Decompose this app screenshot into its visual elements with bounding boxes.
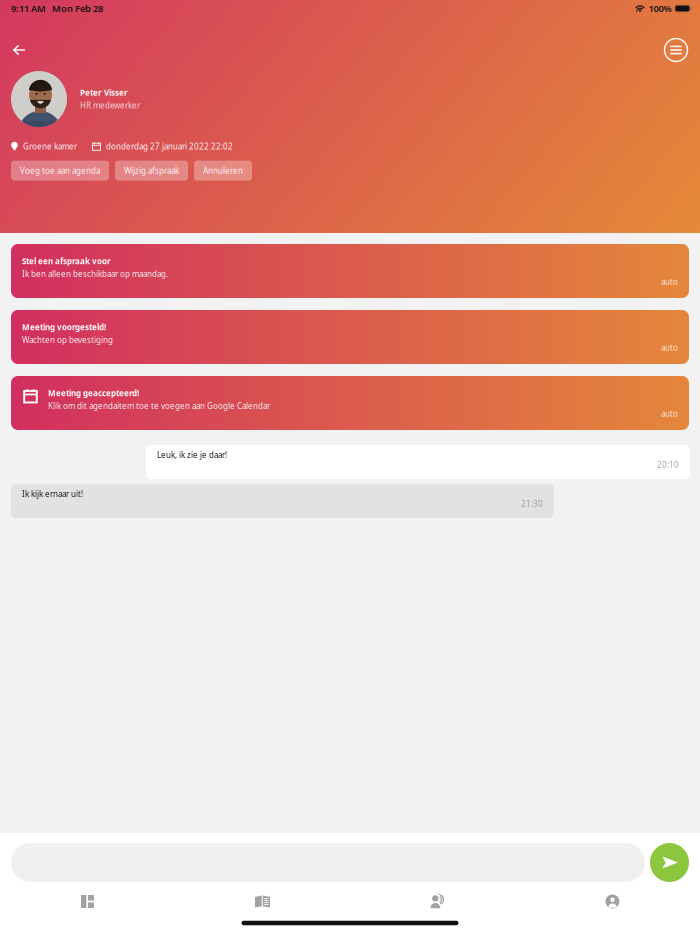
staticText: auto [661, 276, 678, 287]
button[interactable]: Conversations [350, 882, 525, 921]
staticText: Meeting voorgesteld! [22, 322, 106, 332]
button[interactable]: Send [650, 843, 689, 882]
staticText: Annuleren [203, 165, 243, 176]
button[interactable]: Stel een afspraak voor [11, 244, 689, 298]
button[interactable]: Meeting voorgesteld! [11, 310, 689, 364]
staticText: Ik kijk ernaar uit! [22, 489, 83, 499]
staticText: Wijzig afspraak [124, 165, 179, 176]
button[interactable]: Dashboard [0, 882, 175, 921]
staticText: auto [661, 408, 678, 419]
button[interactable]: Meeting geaccepteerd! [11, 376, 689, 430]
staticText: donderdag 27 januari 2022 22:02 [106, 141, 233, 152]
button[interactable]: Wijzig afspraak [115, 161, 188, 181]
staticText: 100% [648, 2, 671, 15]
staticText: Groene kamer [23, 141, 77, 152]
staticText: 21:30 [521, 498, 543, 509]
staticText: HR medewerker [80, 100, 140, 111]
button[interactable]: Voeg toe aan agenda [11, 161, 109, 181]
staticText: 20:10 [657, 459, 679, 470]
staticText: Meeting geaccepteerd! [48, 388, 139, 398]
staticText: Peter Visser [80, 87, 128, 98]
staticText: Klik om dit agendaitem toe te voegen aan… [48, 400, 270, 411]
staticText: Voeg toe aan agenda [20, 165, 100, 176]
staticText: auto [661, 342, 678, 353]
button[interactable]: Profile [525, 882, 700, 921]
button[interactable]: Annuleren [194, 161, 252, 181]
staticText: Stel een afspraak voor [22, 256, 111, 266]
button[interactable]: Back [2, 36, 36, 64]
button[interactable]: Menu [658, 36, 694, 64]
staticText: Wachten op bevestiging [22, 334, 113, 345]
staticText: Ik ben alleen beschikbaar op maandag. [22, 268, 168, 279]
staticText: 9:11 AM [11, 2, 46, 15]
staticText: Leuk, ik zie je daar! [157, 450, 227, 460]
staticText: Mon Feb 28 [52, 2, 103, 15]
button[interactable]: Library [175, 882, 350, 921]
